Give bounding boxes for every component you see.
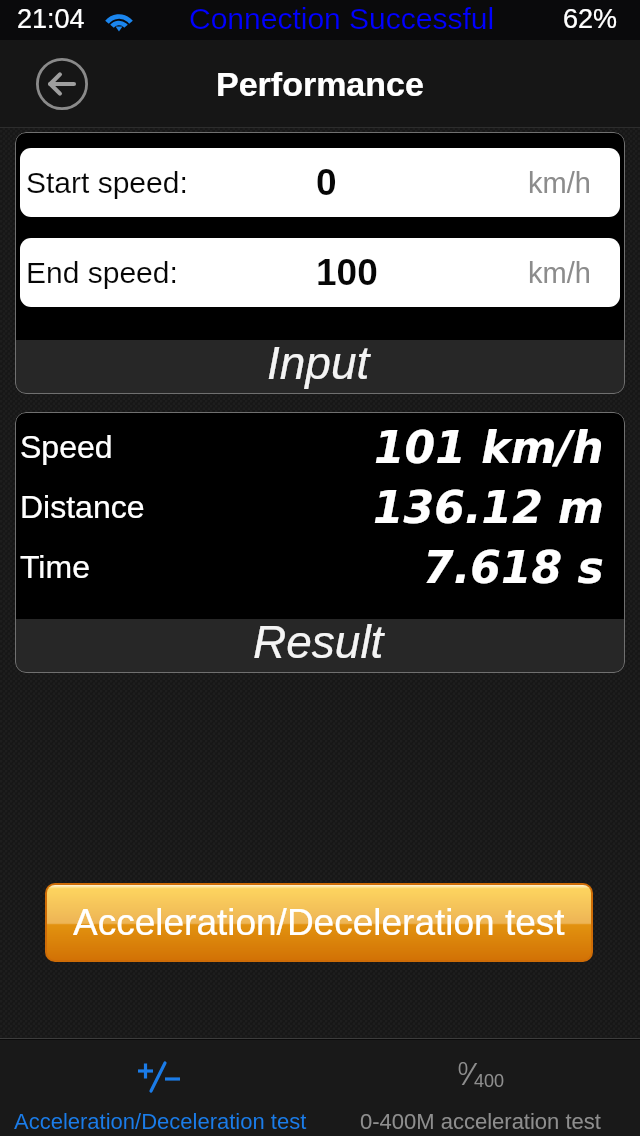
staticText: Distance <box>20 489 145 525</box>
staticText: 136.12 m <box>373 482 604 533</box>
staticText: Time <box>20 549 90 585</box>
staticText: Start speed: <box>26 166 188 200</box>
staticText: 101 km/h <box>374 422 604 473</box>
button[interactable]: Back <box>33 55 91 113</box>
staticText: Speed <box>20 429 113 465</box>
staticText: 0 <box>458 1059 469 1079</box>
staticText: km/h <box>528 167 591 199</box>
button[interactable]: End speed: <box>20 238 620 307</box>
staticText: 0-400M acceleration test <box>360 1109 601 1134</box>
staticText: Result <box>253 616 384 667</box>
staticText: 62% <box>563 4 618 34</box>
staticText: 0 <box>316 162 337 203</box>
staticText: 7.618 s <box>423 542 604 593</box>
staticText: 21:04 <box>17 4 85 34</box>
staticText: Performance <box>216 65 424 103</box>
staticText: Connection Successful <box>189 2 495 36</box>
staticText: ⁄ <box>468 1057 474 1092</box>
button[interactable]: Acceleration/Deceleration test <box>0 1040 320 1136</box>
staticText: 100 <box>316 252 378 293</box>
staticText: km/h <box>528 257 591 289</box>
staticText: Input <box>267 337 370 388</box>
button[interactable]: 0 <box>320 1040 640 1136</box>
staticText: Acceleration/Deceleration test <box>14 1109 307 1134</box>
button[interactable]: Acceleration/Deceleration test <box>47 885 591 960</box>
staticText: 400 <box>474 1071 505 1091</box>
staticText: Acceleration/Deceleration test <box>73 902 565 943</box>
button[interactable]: Start speed: <box>20 148 620 217</box>
staticText: End speed: <box>26 256 178 290</box>
